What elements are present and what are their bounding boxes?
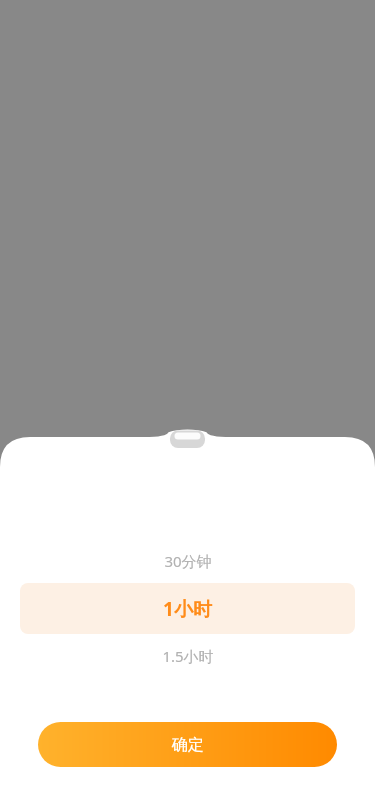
button[interactable]: 30分钟 [20, 539, 355, 583]
staticText: 1小时 [163, 596, 212, 622]
button[interactable]: 1.5小时 [20, 634, 355, 678]
button[interactable]: 1小时 [20, 583, 355, 634]
staticText: 1.5小时 [162, 646, 214, 666]
staticText: 30分钟 [164, 551, 212, 571]
staticText: 确定 [172, 735, 204, 755]
button[interactable]: 确定 [38, 722, 337, 767]
